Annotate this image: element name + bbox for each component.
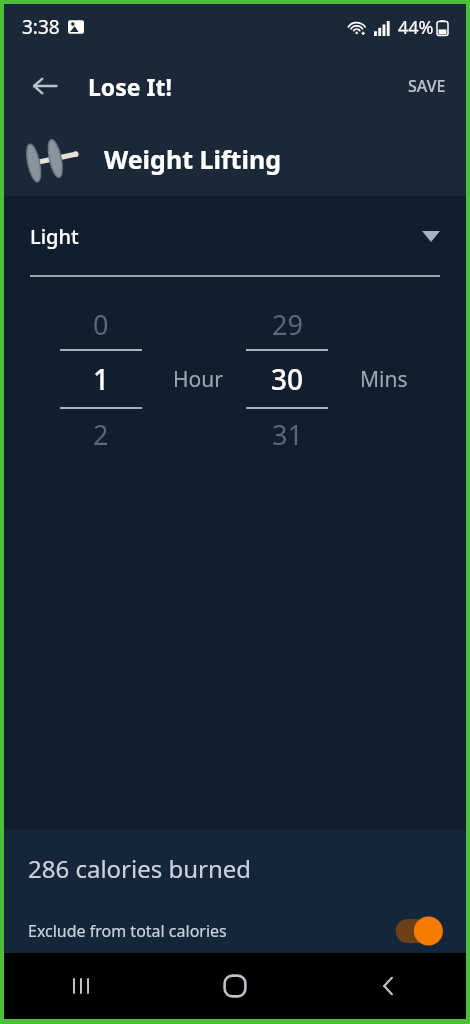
button[interactable]: 29 (246, 299, 328, 349)
staticText: Lose It! (88, 71, 172, 102)
staticText: 286 calories burned (28, 852, 252, 885)
staticText: 29 (272, 306, 303, 343)
button[interactable]: 31 (246, 409, 328, 459)
staticText: Mins (360, 365, 408, 394)
button[interactable]: Light (30, 210, 440, 277)
staticText: Light (30, 223, 79, 250)
staticText: 44% (398, 15, 434, 40)
staticText: 31 (272, 416, 303, 453)
staticText: 1 (93, 360, 110, 398)
staticText: 3:38 (22, 14, 60, 40)
button[interactable]: Home (158, 953, 312, 1019)
staticText: Hour (173, 365, 223, 394)
staticText: 0 (93, 306, 109, 343)
staticText: Exclude from total calories (28, 920, 227, 942)
button[interactable]: SAVE (402, 67, 452, 105)
staticText: 30 (271, 360, 304, 398)
button[interactable]: Back (22, 63, 68, 109)
button[interactable]: 1 (60, 351, 142, 407)
staticText: 2 (93, 416, 109, 453)
button[interactable]: 2 (60, 409, 142, 459)
button[interactable]: Exclude from total calories (4, 911, 466, 951)
button[interactable]: Back (312, 953, 466, 1019)
staticText: Weight Lifting (104, 142, 281, 176)
staticText: SAVE (408, 75, 446, 97)
button[interactable]: 30 (246, 351, 328, 407)
button[interactable]: Recents (4, 953, 158, 1019)
button[interactable]: 0 (60, 299, 142, 349)
